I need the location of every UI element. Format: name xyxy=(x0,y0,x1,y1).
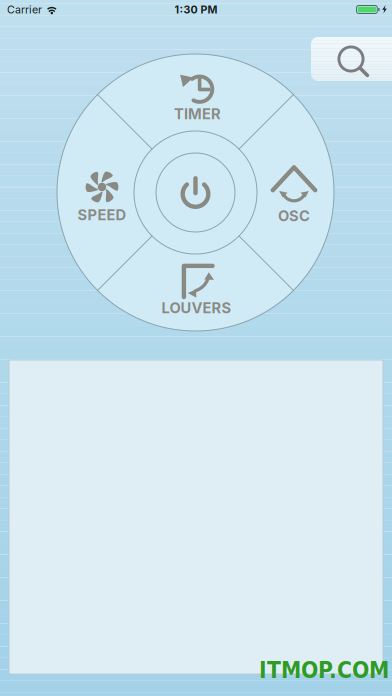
staticText: LOUVERS xyxy=(161,299,231,317)
button[interactable]: LOUVERS xyxy=(133,257,263,319)
staticText: ITMOP.COM xyxy=(259,657,389,683)
button[interactable]: OSC xyxy=(239,161,349,223)
staticText: OSC xyxy=(278,207,310,225)
button[interactable]: TIMER xyxy=(135,65,255,127)
button[interactable]: Power xyxy=(156,153,234,231)
staticText: Carrier xyxy=(7,3,42,16)
staticText: TIMER xyxy=(174,105,221,123)
button[interactable]: Search xyxy=(311,37,392,81)
button[interactable]: SPEED xyxy=(47,164,157,226)
staticText: SPEED xyxy=(77,206,126,224)
staticText: 1:30 PM xyxy=(174,3,217,16)
